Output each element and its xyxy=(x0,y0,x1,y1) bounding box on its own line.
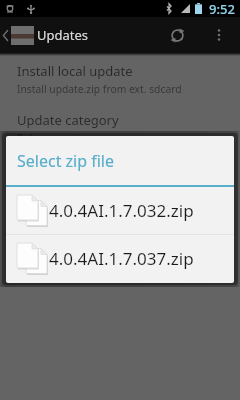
button[interactable]: Refresh xyxy=(154,17,200,53)
staticText: Release versions xyxy=(17,131,98,145)
staticText: 4.0.4AI.1.7.037.zip xyxy=(49,247,194,270)
staticText: Select zip file xyxy=(17,150,115,172)
button[interactable]: Navigate up xyxy=(0,17,34,53)
staticText: 9:52 xyxy=(209,0,235,17)
staticText: Update category xyxy=(17,111,119,129)
button[interactable]: More options xyxy=(200,17,237,53)
staticText: Updates xyxy=(37,26,89,44)
staticText: Install update.zip from ext. sdcard xyxy=(17,82,182,96)
staticText: 4.0.4AI.1.7.032.zip xyxy=(49,199,194,222)
button[interactable]: 4.0.4AI.1.7.037.zip xyxy=(6,235,234,282)
button[interactable]: 4.0.4AI.1.7.032.zip xyxy=(6,187,234,234)
staticText: Install local update xyxy=(17,62,133,80)
